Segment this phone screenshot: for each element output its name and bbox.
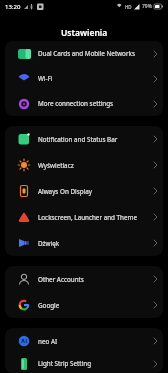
staticText: Dual Cards and Mobile Networks	[38, 49, 135, 58]
button[interactable]: Notification and Status Bar	[5, 126, 163, 152]
button[interactable]: More connection settings	[5, 91, 163, 116]
button[interactable]: Dual Cards and Mobile Networks	[5, 41, 163, 66]
staticText: Lockscreen, Launcher and Theme	[38, 213, 137, 222]
button[interactable]: neo AI	[5, 328, 163, 354]
button[interactable]: Wi-Fi	[5, 66, 163, 91]
button[interactable]: Wyświetlacz	[5, 152, 163, 178]
button[interactable]: Lockscreen, Launcher and Theme	[5, 204, 163, 230]
staticText: neo AI	[38, 337, 58, 346]
staticText: Dźwięk	[38, 239, 60, 248]
staticText: HD	[125, 4, 132, 10]
staticText: Always On Display	[38, 187, 92, 196]
button[interactable]: Light Strip Setting	[5, 354, 163, 373]
staticText: Light Strip Setting	[38, 359, 92, 368]
staticText: 79%	[142, 3, 152, 10]
staticText: Other Accounts	[38, 275, 84, 284]
staticText: Wi-Fi	[38, 74, 53, 83]
staticText: Notification and Status Bar	[38, 135, 118, 144]
staticText: Ustawienia	[61, 27, 108, 39]
staticText: Google	[38, 301, 60, 310]
staticText: More connection settings	[38, 99, 114, 108]
button[interactable]: Google	[5, 292, 163, 318]
staticText: 13:20	[5, 3, 21, 11]
button[interactable]: Always On Display	[5, 178, 163, 204]
button[interactable]: Dźwięk	[5, 230, 163, 256]
button[interactable]: Other Accounts	[5, 266, 163, 292]
staticText: Wyświetlacz	[38, 161, 74, 170]
